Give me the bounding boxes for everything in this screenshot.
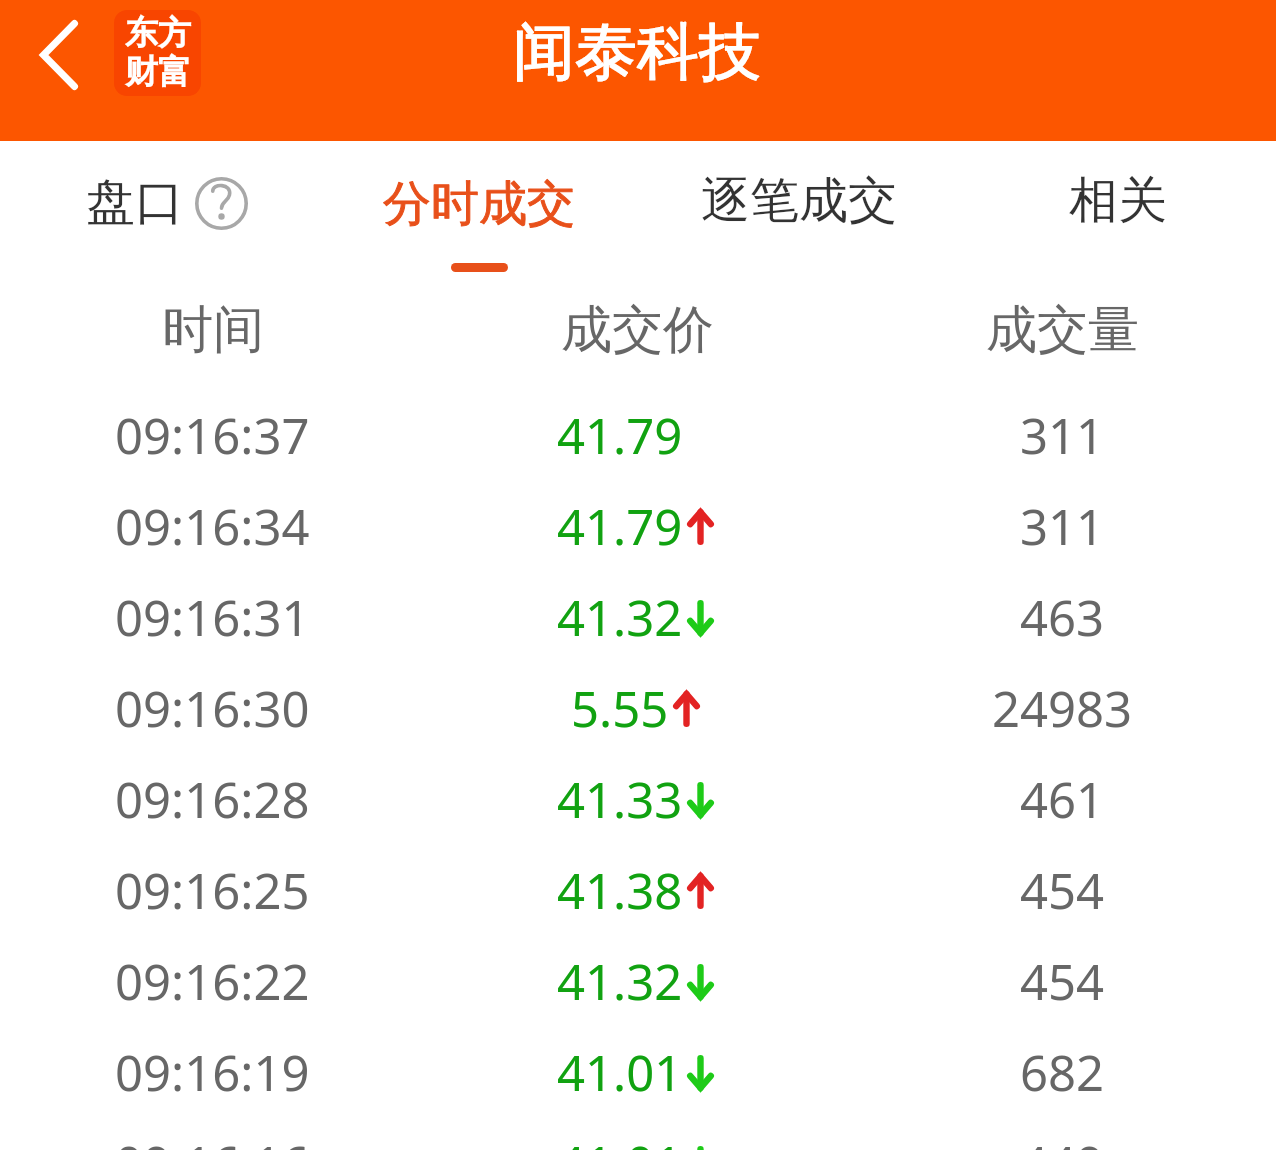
staticText: 分时成交	[383, 174, 575, 234]
button[interactable]: 东方	[114, 10, 201, 96]
button[interactable]: 09:16:34	[0, 481, 1276, 572]
button[interactable]: 09:16:37	[0, 390, 1276, 481]
staticText: 454	[1020, 857, 1105, 924]
button[interactable]: 分时成交	[284, 150, 674, 280]
staticText: 09:16:25	[115, 857, 310, 924]
staticText: 逐笔成交	[701, 170, 897, 232]
button[interactable]: 09:16:22	[0, 936, 1276, 1027]
button[interactable]: 09:16:30	[0, 663, 1276, 754]
button[interactable]: 09:16:25	[0, 845, 1276, 936]
button[interactable]: 09:16:31	[0, 572, 1276, 663]
staticText: 41.79	[557, 402, 683, 469]
staticText: 09:16:31	[115, 584, 310, 651]
staticText: 09:16:16	[115, 1130, 310, 1150]
staticText: 09:16:34	[115, 493, 310, 560]
staticText: 盘口	[86, 172, 184, 234]
staticText: 41.01	[557, 1130, 683, 1150]
button[interactable]: 09:16:19	[0, 1027, 1276, 1118]
other: Help	[195, 177, 248, 230]
button[interactable]: 09:16:16	[0, 1118, 1276, 1150]
staticText: 09:16:37	[115, 402, 310, 469]
staticText: 682	[1020, 1039, 1105, 1106]
button[interactable]: 盘口	[48, 153, 300, 253]
button[interactable]: 09:16:28	[0, 754, 1276, 845]
staticText: 时间	[162, 298, 264, 362]
staticText: 24983	[992, 675, 1133, 742]
staticText: 相关	[1069, 170, 1167, 232]
staticText: 449	[1020, 1130, 1105, 1150]
staticText: 454	[1020, 948, 1105, 1015]
staticText: 41.33	[557, 766, 683, 833]
staticText: 41.38	[557, 857, 683, 924]
staticText: 09:16:22	[115, 948, 310, 1015]
button[interactable]: Back	[11, 7, 107, 103]
staticText: 成交价	[561, 298, 714, 362]
staticText: 41.32	[557, 948, 683, 1015]
staticText: 461	[1020, 766, 1105, 833]
staticText: 41.32	[557, 584, 683, 651]
staticText: 463	[1020, 584, 1105, 651]
staticText: 财富	[125, 51, 191, 93]
staticText: 闻泰科技	[513, 13, 761, 91]
staticText: 41.01	[557, 1039, 683, 1106]
staticText: 东方	[125, 12, 191, 54]
staticText: 41.79	[557, 493, 683, 560]
staticText: 311	[1020, 402, 1105, 469]
staticText: 09:16:28	[115, 766, 310, 833]
staticText: 5.55	[571, 675, 669, 742]
staticText: 分时成交	[383, 174, 575, 234]
staticText: 311	[1020, 493, 1105, 560]
button[interactable]: 相关	[1018, 150, 1214, 250]
button[interactable]: 逐笔成交	[690, 150, 905, 250]
staticText: 闻泰科技	[513, 13, 761, 91]
staticText: 09:16:30	[115, 675, 310, 742]
staticText: 成交量	[986, 298, 1139, 362]
staticText: 09:16:19	[115, 1039, 310, 1106]
